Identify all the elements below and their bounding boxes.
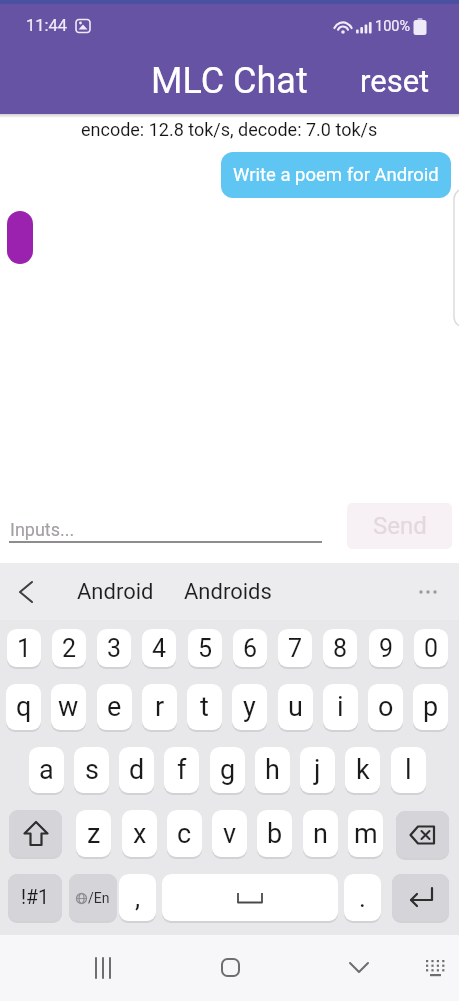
- staticText: reset: [360, 63, 430, 99]
- button[interactable]: b: [257, 810, 292, 857]
- staticText: n: [313, 818, 328, 850]
- button[interactable]: a: [29, 747, 64, 793]
- staticText: Android: [77, 579, 154, 605]
- staticText: 100%: [375, 18, 411, 35]
- button[interactable]: t: [187, 684, 222, 730]
- staticText: encode: 12.8 tok/s, decode: 7.0 tok/s: [81, 119, 378, 140]
- button[interactable]: Androids: [172, 570, 284, 614]
- button[interactable]: Send: [347, 503, 452, 549]
- button[interactable]: 0: [414, 629, 448, 667]
- staticText: Send: [373, 512, 427, 540]
- staticText: 1: [17, 634, 32, 663]
- staticText: q: [16, 691, 32, 723]
- button[interactable]: c: [167, 810, 202, 857]
- button[interactable]: 4: [142, 629, 176, 667]
- button[interactable]: [162, 874, 338, 921]
- staticText: d: [129, 754, 145, 786]
- button[interactable]: 8: [323, 629, 357, 667]
- staticText: 0: [424, 634, 439, 663]
- staticText: r: [155, 691, 165, 723]
- button[interactable]: o: [368, 684, 403, 730]
- staticText: m: [354, 818, 378, 850]
- button[interactable]: v: [212, 810, 247, 857]
- button[interactable]: y: [232, 684, 267, 730]
- staticText: v: [223, 818, 237, 850]
- button[interactable]: j: [300, 747, 335, 793]
- staticText: y: [243, 691, 256, 723]
- staticText: Write a poem for Android: [233, 164, 439, 186]
- staticText: 4: [152, 634, 167, 663]
- button[interactable]: [392, 874, 449, 921]
- staticText: j: [314, 754, 321, 786]
- button[interactable]: m: [348, 810, 383, 857]
- staticText: 5: [198, 634, 213, 663]
- button[interactable]: x: [122, 810, 157, 857]
- button[interactable]: l: [391, 747, 426, 793]
- button[interactable]: [355, 943, 415, 993]
- button[interactable]: s: [74, 747, 109, 793]
- button[interactable]: r: [142, 684, 177, 730]
- staticText: !#1: [21, 886, 49, 909]
- button[interactable]: w: [51, 684, 86, 730]
- staticText: .: [359, 883, 366, 913]
- button[interactable]: 6: [233, 629, 267, 667]
- staticText: MLC Chat: [151, 60, 308, 102]
- button[interactable]: reset: [360, 63, 430, 99]
- button[interactable]: e: [97, 684, 132, 730]
- button[interactable]: g: [210, 747, 245, 793]
- staticText: o: [378, 691, 394, 723]
- staticText: Androids: [184, 579, 272, 605]
- button[interactable]: ,: [119, 874, 156, 921]
- staticText: 3: [107, 634, 122, 663]
- button[interactable]: [9, 810, 62, 857]
- button[interactable]: i: [323, 684, 358, 730]
- staticText: x: [133, 818, 147, 850]
- staticText: i: [337, 691, 344, 723]
- staticText: w: [58, 691, 79, 723]
- button[interactable]: k: [345, 747, 380, 793]
- staticText: 6: [243, 634, 258, 663]
- button[interactable]: u: [278, 684, 313, 730]
- button[interactable]: h: [255, 747, 290, 793]
- staticText: z: [87, 818, 101, 850]
- button[interactable]: p: [413, 684, 448, 730]
- staticText: p: [423, 691, 439, 723]
- button[interactable]: /En: [69, 874, 117, 921]
- button[interactable]: f: [164, 747, 199, 793]
- staticText: 11:44: [26, 16, 68, 35]
- staticText: t: [200, 691, 209, 723]
- button[interactable]: 5: [188, 629, 222, 667]
- staticText: 7: [288, 634, 303, 663]
- staticText: b: [267, 818, 283, 850]
- staticText: k: [356, 754, 370, 786]
- button[interactable]: 7: [278, 629, 312, 667]
- staticText: 2: [62, 634, 77, 663]
- staticText: l: [405, 754, 412, 786]
- staticText: u: [288, 691, 303, 723]
- staticText: Inputs...: [10, 519, 75, 540]
- button[interactable]: n: [303, 810, 338, 857]
- staticText: c: [177, 818, 192, 850]
- staticText: e: [107, 691, 122, 723]
- button[interactable]: [44, 943, 104, 993]
- staticText: 9: [379, 634, 394, 663]
- button[interactable]: 1: [7, 629, 41, 667]
- button[interactable]: 9: [369, 629, 403, 667]
- staticText: g: [220, 754, 236, 786]
- button[interactable]: d: [119, 747, 154, 793]
- button[interactable]: q: [6, 684, 41, 730]
- button[interactable]: Android: [60, 570, 170, 614]
- button[interactable]: Write a poem for Android: [221, 152, 451, 198]
- button[interactable]: !#1: [8, 874, 62, 921]
- staticText: h: [265, 754, 280, 786]
- staticText: a: [39, 754, 54, 786]
- button[interactable]: 3: [97, 629, 131, 667]
- button[interactable]: 2: [52, 629, 86, 667]
- button[interactable]: [6, 570, 50, 614]
- button[interactable]: .: [344, 874, 381, 921]
- staticText: 8: [333, 634, 348, 663]
- button[interactable]: [396, 811, 449, 858]
- button[interactable]: z: [76, 810, 111, 857]
